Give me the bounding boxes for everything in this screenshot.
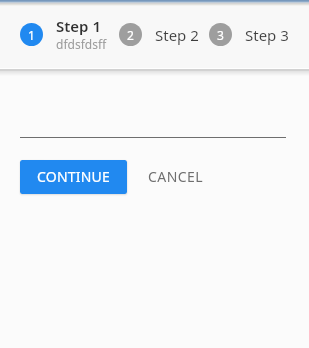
button[interactable]: 2 [119,15,199,54]
staticText: Step 2 [155,25,199,45]
button[interactable]: CONTINUE [20,160,127,194]
staticText: 2 [127,27,134,43]
staticText: 3 [217,27,224,43]
staticText: dfdsfdsff [56,36,107,52]
button[interactable]: 3 [209,15,289,54]
staticText: Step 1 [56,16,101,36]
staticText: 1 [28,27,35,43]
staticText: Step 3 [245,25,289,45]
button[interactable]: CANCEL [127,160,225,194]
staticText: CONTINUE [37,167,110,186]
button[interactable]: 1 [20,8,107,60]
staticText: CANCEL [148,167,204,186]
